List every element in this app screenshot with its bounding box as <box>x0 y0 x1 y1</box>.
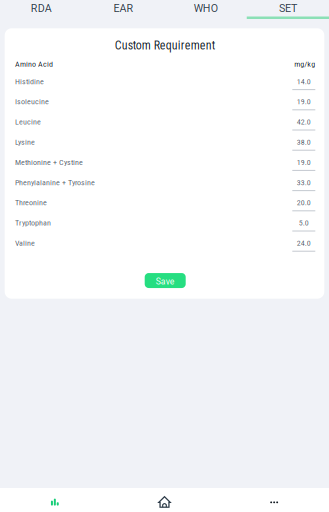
staticText: 20.0 <box>297 198 311 207</box>
staticText: WHO <box>194 2 218 14</box>
button[interactable]: RDA <box>0 0 82 19</box>
button[interactable]: Home <box>110 488 219 512</box>
staticText: EAR <box>113 2 133 14</box>
button[interactable]: Save <box>145 273 186 288</box>
staticText: Threonine <box>15 198 47 207</box>
staticText: 19.0 <box>297 97 311 106</box>
staticText: 38.0 <box>297 137 311 147</box>
staticText: Isoleucine <box>15 97 49 106</box>
staticText: Save <box>156 276 175 287</box>
staticText: RDA <box>31 2 52 14</box>
button[interactable]: More <box>219 488 329 512</box>
staticText: 24.0 <box>297 238 311 248</box>
staticText: 14.0 <box>297 77 311 86</box>
staticText: mg/kg <box>294 59 315 69</box>
staticText: SET <box>279 2 297 14</box>
staticText: Valine <box>15 238 35 248</box>
staticText: Amino Acid <box>15 59 53 69</box>
staticText: 19.0 <box>297 157 311 167</box>
staticText: Histidine <box>15 77 44 86</box>
button[interactable]: Statistics <box>0 488 110 512</box>
staticText: Lysine <box>15 137 35 147</box>
button[interactable]: SET <box>247 0 329 19</box>
staticText: Leucine <box>15 117 41 126</box>
button[interactable]: EAR <box>82 0 164 19</box>
staticText: 33.0 <box>297 178 311 187</box>
button[interactable]: WHO <box>164 0 247 19</box>
staticText: 5.0 <box>299 218 309 227</box>
staticText: Phenylalanine + Tyrosine <box>15 178 95 187</box>
staticText: Custom Requirement <box>115 38 216 52</box>
staticText: Methionine + Cystine <box>15 157 83 167</box>
staticText: 42.0 <box>297 117 311 126</box>
staticText: Tryptophan <box>15 218 51 227</box>
